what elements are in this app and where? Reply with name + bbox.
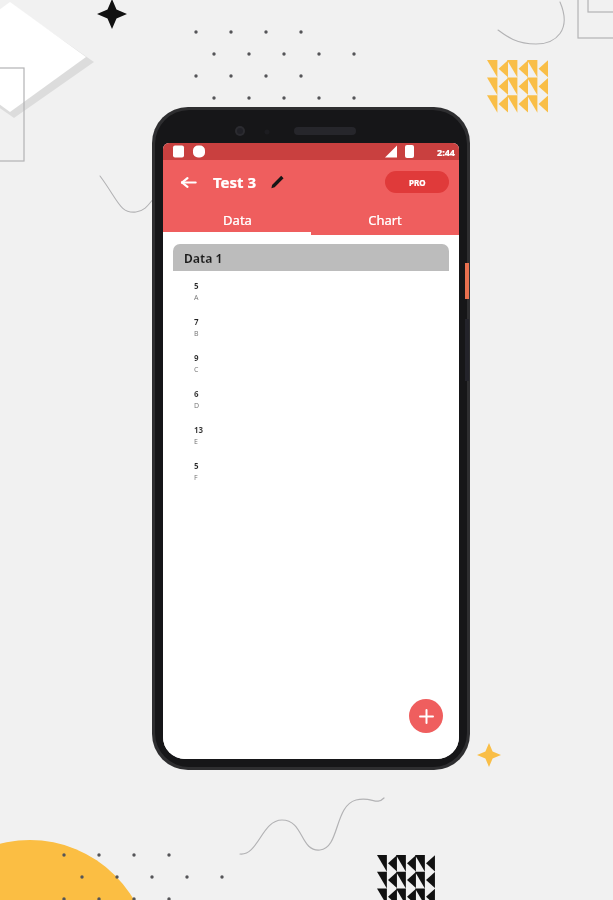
staticText: Test 3 [213, 172, 257, 192]
button[interactable]: Data [163, 204, 311, 235]
staticText: A [194, 293, 199, 303]
staticText: 5 [194, 460, 199, 471]
button[interactable]: 7 [194, 316, 449, 352]
staticText: 5 [194, 280, 199, 291]
button[interactable]: Add data [409, 699, 443, 733]
button[interactable]: 6 [194, 388, 449, 424]
button[interactable]: Chart [311, 204, 459, 235]
staticText: 13 [194, 424, 204, 435]
staticText: B [194, 329, 199, 339]
button[interactable]: PRO [385, 171, 449, 193]
staticText: C [194, 365, 199, 375]
staticText: F [194, 473, 198, 483]
staticText: 7 [194, 316, 199, 327]
staticText: 2:44 [437, 146, 455, 158]
staticText: 9 [194, 352, 199, 363]
staticText: Chart [368, 211, 402, 229]
staticText: Data 1 [184, 250, 223, 266]
button[interactable]: Edit name [265, 170, 289, 194]
button[interactable]: 9 [194, 352, 449, 388]
button[interactable]: 5 [194, 460, 449, 496]
staticText: D [194, 401, 200, 411]
button[interactable]: 13 [194, 424, 449, 460]
button[interactable]: Back [173, 167, 203, 197]
button[interactable]: Data 1 [173, 244, 449, 508]
staticText: PRO [409, 177, 426, 188]
staticText: Data [223, 211, 252, 229]
staticText: 6 [194, 388, 199, 399]
button[interactable]: 5 [194, 280, 449, 316]
staticText: E [194, 437, 198, 447]
